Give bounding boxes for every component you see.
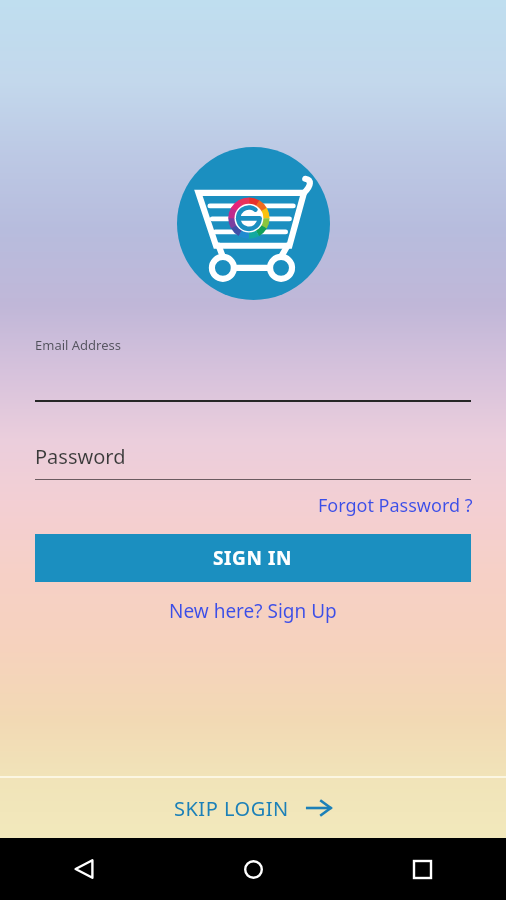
button[interactable]: Password [35,443,471,480]
staticText: SKIP LOGIN [174,795,289,822]
staticText: New here? Sign Up [169,598,337,624]
staticText: Email Address [35,336,121,354]
button[interactable]: New here? Sign Up [169,598,337,624]
button[interactable]: SKIP LOGIN [0,778,506,838]
staticText: Forgot Password ? [318,493,473,518]
button[interactable]: Forgot Password ? [318,493,473,518]
button[interactable]: Home [231,847,275,891]
other: App logo [177,147,330,300]
button[interactable]: Back [62,847,106,891]
staticText: SIGN IN [213,545,293,571]
button[interactable]: Email Address [35,336,471,402]
button[interactable]: Recent apps [400,847,444,891]
button[interactable]: SIGN IN [35,534,471,582]
staticText: Password [35,443,126,470]
